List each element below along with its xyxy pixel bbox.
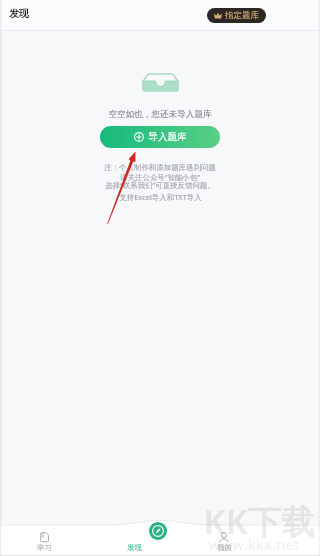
staticText: 指定题库 (225, 10, 259, 21)
staticText: 选择“联系我们”可直接反馈问题。 (105, 180, 215, 190)
button[interactable]: 导入题库 (100, 126, 220, 148)
button[interactable]: 发现 (149, 522, 167, 540)
staticText: KK下载 (203, 498, 315, 544)
button[interactable]: 我的 (202, 516, 246, 556)
button[interactable]: 指定题库 (207, 8, 266, 23)
staticText: 导入题库 (148, 131, 187, 143)
staticText: 支持Excel导入和TXT导入 (119, 192, 202, 202)
button[interactable]: 学习 (22, 516, 66, 556)
staticText: 学习 (37, 543, 52, 552)
staticText: 发现 (127, 543, 142, 552)
staticText: 我的 (217, 543, 232, 552)
staticText: 发现 (9, 8, 29, 20)
staticText: 空空如也，您还未导入题库 (108, 109, 212, 120)
staticText: 请关注公众号“智能小包” (120, 172, 200, 182)
staticText: 注：个人制作和添加题库遇到问题 (104, 163, 216, 172)
button[interactable]: 发现 (112, 516, 156, 556)
staticText: www.kkx.net (208, 534, 300, 555)
